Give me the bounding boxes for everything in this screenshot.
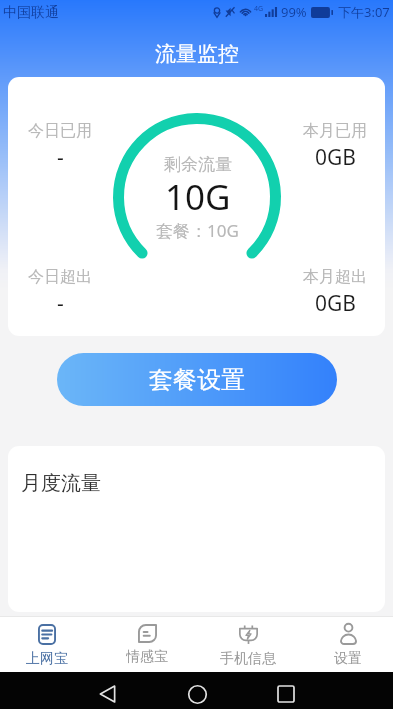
button[interactable]: 设置 [295,617,393,672]
staticText: - [57,289,64,318]
button[interactable]: 手机信息 [197,617,295,672]
button[interactable]: Home [185,682,209,706]
staticText: 下午3:07 [338,3,390,21]
staticText: 4G [254,4,264,14]
staticText: 月度流量 [21,471,101,496]
staticText: - [57,143,64,172]
button[interactable]: Recents [274,682,298,706]
staticText: 套餐：10G [156,219,239,242]
button[interactable]: Back [95,682,119,706]
staticText: 上网宝 [26,650,68,665]
staticText: 套餐设置 [149,365,245,395]
staticText: 10G [165,173,231,221]
staticText: 本月超出 [303,267,367,287]
staticText: 今日已用 [28,121,92,141]
staticText: 设置 [334,650,362,665]
staticText: 本月已用 [303,121,367,141]
button[interactable]: 上网宝 [0,617,99,672]
staticText: 流量监控 [155,41,239,67]
staticText: 今日超出 [28,267,92,287]
staticText: 剩余流量 [164,154,232,175]
staticText: 中国联通 [3,4,59,22]
staticText: 0GB [315,289,356,318]
staticText: 0GB [315,143,356,172]
staticText: 手机信息 [220,650,276,665]
staticText: 99% [281,3,307,21]
button[interactable]: 套餐设置 [57,353,337,406]
button[interactable]: 情感宝 [99,617,197,672]
staticText: 情感宝 [126,648,168,665]
